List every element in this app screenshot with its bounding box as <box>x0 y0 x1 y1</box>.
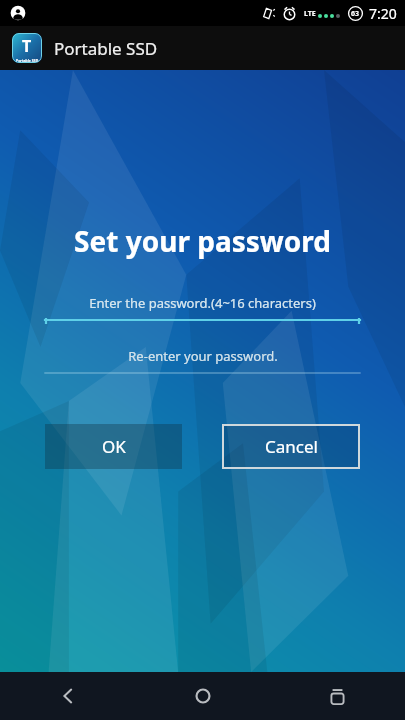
staticText: 7:20 <box>369 4 397 23</box>
staticText: Portable SSD <box>54 37 158 60</box>
button[interactable]: Re-enter your password. <box>45 344 360 377</box>
staticText: Cancel <box>265 435 318 458</box>
staticText: 63 <box>351 9 360 19</box>
button[interactable]: Enter the password.(4~16 characters) <box>45 291 360 324</box>
button[interactable]: Recent apps <box>270 672 405 720</box>
staticText: Re-enter your password. <box>128 347 278 365</box>
staticText: T <box>22 35 32 57</box>
button[interactable]: Cancel <box>222 424 360 469</box>
staticText: Set your password <box>74 222 331 260</box>
staticText: Enter the password.(4~16 characters) <box>89 294 316 312</box>
button[interactable]: Back <box>0 672 135 720</box>
staticText: Portable SSD <box>16 58 39 63</box>
staticText: OK <box>102 435 126 458</box>
button[interactable]: Home <box>135 672 270 720</box>
staticText: LTE <box>304 9 316 19</box>
button[interactable]: OK <box>45 424 182 469</box>
